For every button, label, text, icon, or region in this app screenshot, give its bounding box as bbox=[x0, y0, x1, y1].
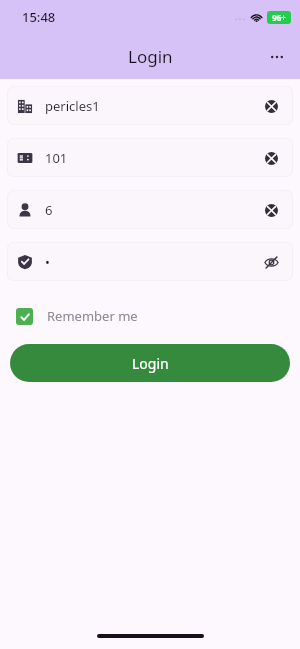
staticText: Remember me bbox=[47, 307, 138, 325]
button[interactable]: pericles1 bbox=[7, 86, 293, 125]
staticText: Login bbox=[128, 45, 173, 68]
button[interactable]: • bbox=[7, 242, 293, 281]
button[interactable]: 101 bbox=[7, 138, 293, 177]
button[interactable]: Clear company bbox=[259, 94, 283, 118]
button[interactable]: 6 bbox=[7, 190, 293, 229]
staticText: • bbox=[45, 253, 50, 271]
staticText: 15:48 bbox=[22, 8, 56, 26]
staticText: pericles1 bbox=[45, 97, 100, 115]
button[interactable]: Show password bbox=[259, 250, 283, 274]
staticText: Login bbox=[132, 354, 169, 373]
button[interactable]: Remember me bbox=[14, 301, 140, 331]
button[interactable]: Clear code bbox=[259, 146, 283, 170]
staticText: 6 bbox=[45, 201, 53, 219]
button[interactable]: Clear user bbox=[259, 198, 283, 222]
button[interactable]: Login bbox=[10, 344, 290, 382]
button[interactable]: More options bbox=[260, 40, 294, 74]
staticText: 96+ bbox=[272, 12, 286, 23]
staticText: 101 bbox=[45, 149, 68, 167]
